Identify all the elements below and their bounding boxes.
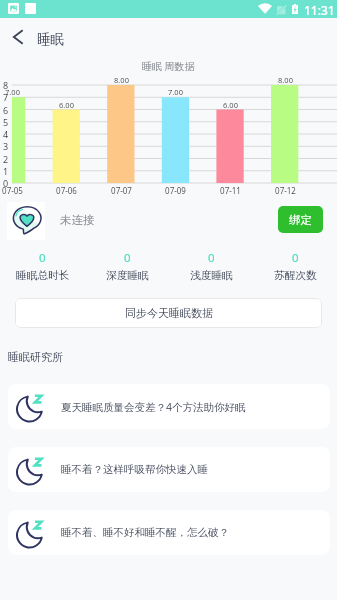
staticText: 2 bbox=[3, 153, 9, 165]
staticText: 睡眠 bbox=[37, 31, 64, 48]
staticText: 6.00 bbox=[59, 100, 74, 110]
button[interactable]: 夏天睡眠质量会变差？4个方法助你好眠 bbox=[8, 384, 330, 429]
staticText: 0 bbox=[39, 250, 46, 266]
staticText: 浅度睡眠 bbox=[190, 269, 233, 282]
staticText: 0 bbox=[208, 250, 215, 266]
staticText: 睡不着？这样呼吸帮你快速入睡 bbox=[61, 463, 208, 476]
staticText: 8 bbox=[3, 79, 9, 91]
staticText: 苏醒次数 bbox=[274, 269, 317, 282]
staticText: 7.00 bbox=[5, 87, 20, 97]
button[interactable]: 绑定 bbox=[278, 206, 323, 233]
staticText: 8.00 bbox=[278, 75, 293, 85]
staticText: 07-06 bbox=[56, 185, 77, 196]
staticText: 睡眠研究所 bbox=[8, 350, 63, 364]
staticText: 同步今天睡眠数据 bbox=[125, 306, 213, 320]
staticText: 8.00 bbox=[114, 75, 129, 85]
staticText: 夏天睡眠质量会变差？4个方法助你好眠 bbox=[61, 400, 246, 414]
button[interactable]: 睡不着？这样呼吸帮你快速入睡 bbox=[8, 447, 330, 492]
staticText: 6 bbox=[3, 104, 9, 116]
staticText: 绑定 bbox=[289, 213, 312, 227]
staticText: 07-11 bbox=[220, 185, 241, 196]
staticText: 11:31 bbox=[304, 2, 335, 18]
staticText: 1 bbox=[3, 165, 9, 177]
staticText: 6.00 bbox=[223, 100, 238, 110]
button[interactable]: 同步今天睡眠数据 bbox=[15, 298, 322, 328]
staticText: 未连接 bbox=[60, 213, 95, 227]
staticText: 7.00 bbox=[168, 87, 183, 97]
staticText: 0 bbox=[292, 250, 299, 266]
staticText: 睡不着、睡不好和睡不醒，怎么破？ bbox=[61, 526, 229, 539]
staticText: 3 bbox=[3, 140, 9, 152]
staticText: 07-09 bbox=[165, 185, 186, 196]
button[interactable]: Back bbox=[5, 24, 31, 50]
staticText: 07-07 bbox=[111, 185, 132, 196]
staticText: 睡眠总时长 bbox=[16, 269, 70, 282]
staticText: 5 bbox=[3, 116, 9, 128]
button[interactable]: 睡不着、睡不好和睡不醒，怎么破？ bbox=[8, 510, 330, 555]
staticText: 07-05 bbox=[2, 185, 23, 196]
staticText: 0 bbox=[3, 177, 9, 189]
staticText: 4 bbox=[3, 128, 9, 140]
staticText: 0 bbox=[124, 250, 131, 266]
staticText: 睡眠 周数据 bbox=[142, 59, 195, 73]
staticText: 深度睡眠 bbox=[106, 269, 149, 282]
staticText: 07-12 bbox=[275, 185, 296, 196]
staticText: 7 bbox=[3, 91, 9, 103]
